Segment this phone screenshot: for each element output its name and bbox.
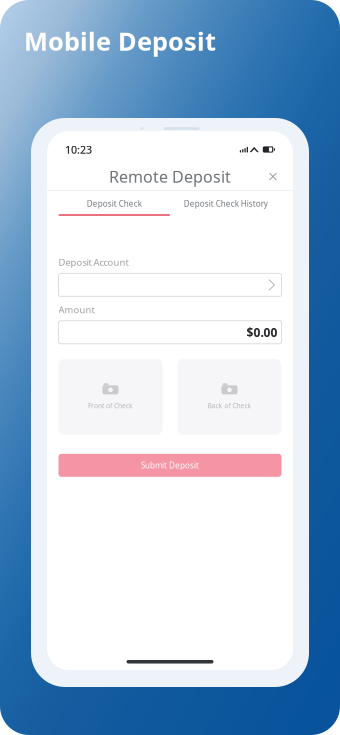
staticText: $0.00 <box>246 324 277 340</box>
staticText: Mobile Deposit <box>24 24 216 58</box>
staticText: Deposit Account <box>58 256 128 268</box>
staticText: Remote Deposit <box>109 166 231 187</box>
staticText: Deposit Check <box>87 198 142 209</box>
button[interactable]: Deposit Check <box>58 191 170 221</box>
staticText: Back of Check <box>207 401 251 410</box>
staticText: 10:23 <box>65 142 92 157</box>
button[interactable]: Front of Check <box>58 359 162 435</box>
button[interactable]: Close <box>262 165 284 187</box>
button[interactable]: Deposit Check History <box>170 191 281 221</box>
staticText: Submit Deposit <box>141 460 199 471</box>
button[interactable]: Submit Deposit <box>58 454 281 477</box>
button[interactable] <box>58 273 281 296</box>
staticText: Deposit Check History <box>184 198 268 209</box>
staticText: Amount <box>58 303 94 316</box>
button[interactable]: Back of Check <box>177 359 281 435</box>
staticText: Front of Check <box>88 401 133 410</box>
